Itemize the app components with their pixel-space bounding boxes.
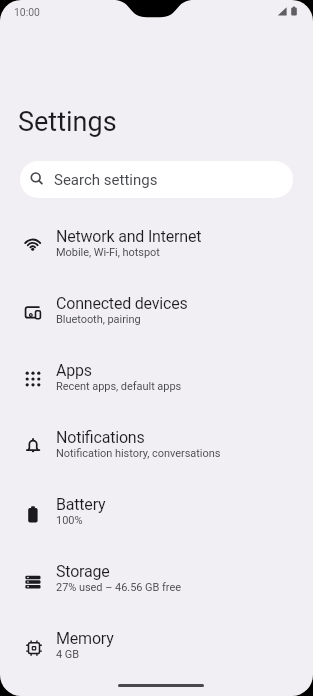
button[interactable] [118, 684, 204, 687]
button[interactable]: Battery [0, 477, 313, 544]
button[interactable]: Storage [0, 544, 313, 611]
staticText: Storage [56, 562, 110, 581]
staticText: Settings [18, 106, 117, 138]
button[interactable]: Apps [0, 343, 313, 410]
button[interactable]: Search settings [20, 161, 293, 198]
staticText: Mobile, Wi-Fi, hotspot [56, 246, 160, 259]
button[interactable]: Network and Internet [0, 209, 313, 276]
staticText: 4 GB [56, 648, 80, 661]
staticText: 27% used – 46.56 GB free [56, 581, 181, 594]
staticText: Apps [56, 361, 92, 380]
button[interactable]: Notifications [0, 410, 313, 477]
staticText: Notification history, conversations [56, 447, 221, 460]
staticText: Memory [56, 629, 114, 648]
staticText: 10:00 [14, 6, 40, 18]
staticText: Battery [56, 495, 106, 514]
staticText: Notifications [56, 428, 145, 447]
button[interactable]: Memory [0, 611, 313, 678]
button[interactable]: Connected devices [0, 276, 313, 343]
staticText: Network and Internet [56, 227, 202, 246]
staticText: Recent apps, default apps [56, 380, 182, 393]
staticText: 100% [56, 514, 83, 527]
staticText: Bluetooth, pairing [56, 313, 141, 326]
staticText: Search settings [54, 171, 158, 189]
staticText: Connected devices [56, 294, 188, 313]
